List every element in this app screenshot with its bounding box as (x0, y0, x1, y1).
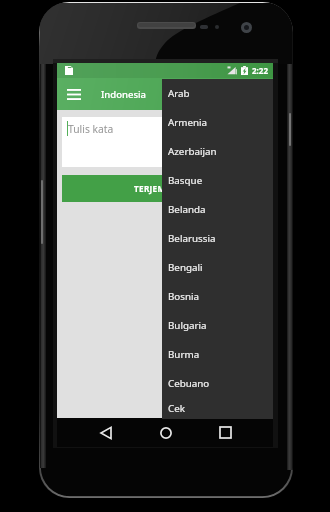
staticText: Cebuano (168, 377, 210, 390)
staticText: Bulgaria (168, 319, 207, 332)
staticText: Armenia (168, 116, 208, 129)
button[interactable]: Bengali (162, 253, 273, 282)
button[interactable]: Recent apps (207, 418, 244, 447)
button[interactable]: Basque (162, 166, 273, 195)
staticText: Burma (168, 348, 200, 361)
button[interactable]: Bulgaria (162, 311, 273, 340)
button[interactable]: Burma (162, 340, 273, 369)
button[interactable]: Belarussia (162, 224, 273, 253)
button[interactable]: Cebuano (162, 369, 273, 398)
button[interactable]: Cek (162, 398, 273, 419)
button[interactable]: Armenia (162, 108, 273, 137)
staticText: Belarussia (168, 232, 216, 245)
button[interactable]: Open navigation menu (57, 78, 91, 110)
staticText: Bosnia (168, 290, 200, 303)
button[interactable]: Back (87, 418, 124, 447)
staticText: Arab (168, 87, 190, 100)
button[interactable]: Azerbaijan (162, 137, 273, 166)
staticText: Tulis kata (68, 122, 114, 136)
staticText: 2:22 (252, 65, 268, 76)
staticText: Indonesia (101, 88, 147, 101)
button[interactable]: TERJEMAHKAN (62, 175, 268, 202)
staticText: Cek (168, 402, 185, 415)
button[interactable]: Belanda (162, 195, 273, 224)
staticText: Azerbaijan (168, 145, 217, 158)
staticText: Bengali (168, 261, 203, 274)
button[interactable]: Home (147, 418, 184, 447)
button[interactable]: Bosnia (162, 282, 273, 311)
staticText: TERJEMAHKAN (134, 183, 197, 194)
staticText: Belanda (168, 203, 206, 216)
staticText: Basque (168, 174, 203, 187)
button[interactable]: Arab (162, 79, 273, 108)
